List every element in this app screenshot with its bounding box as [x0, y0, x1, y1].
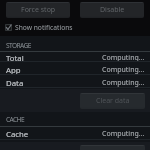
staticText: Cache [6, 129, 29, 140]
staticText: Computing... [102, 78, 145, 88]
button[interactable]: Force stop [6, 2, 70, 18]
staticText: Disable [100, 5, 125, 15]
staticText: Clear data [96, 96, 130, 106]
staticText: Computing... [102, 65, 145, 75]
button[interactable]: Cache [0, 128, 150, 140]
button[interactable]: App [0, 64, 150, 76]
staticText: Computing... [102, 129, 145, 139]
staticText: Force stop [21, 5, 56, 15]
staticText: CACHE [6, 115, 24, 124]
staticText: Data [6, 78, 24, 89]
button[interactable]: Show notifications [0, 21, 150, 34]
button[interactable]: Total [0, 52, 150, 64]
button[interactable]: Data [0, 77, 150, 89]
staticText: Show notifications [15, 23, 73, 32]
button[interactable]: Clear data [80, 93, 145, 109]
staticText: Total [6, 53, 24, 64]
staticText: Computing... [102, 53, 145, 63]
button[interactable]: Clear cache [80, 145, 145, 150]
button[interactable]: Disable [80, 2, 144, 18]
staticText: STORAGE [6, 41, 31, 50]
staticText: App [6, 65, 21, 76]
